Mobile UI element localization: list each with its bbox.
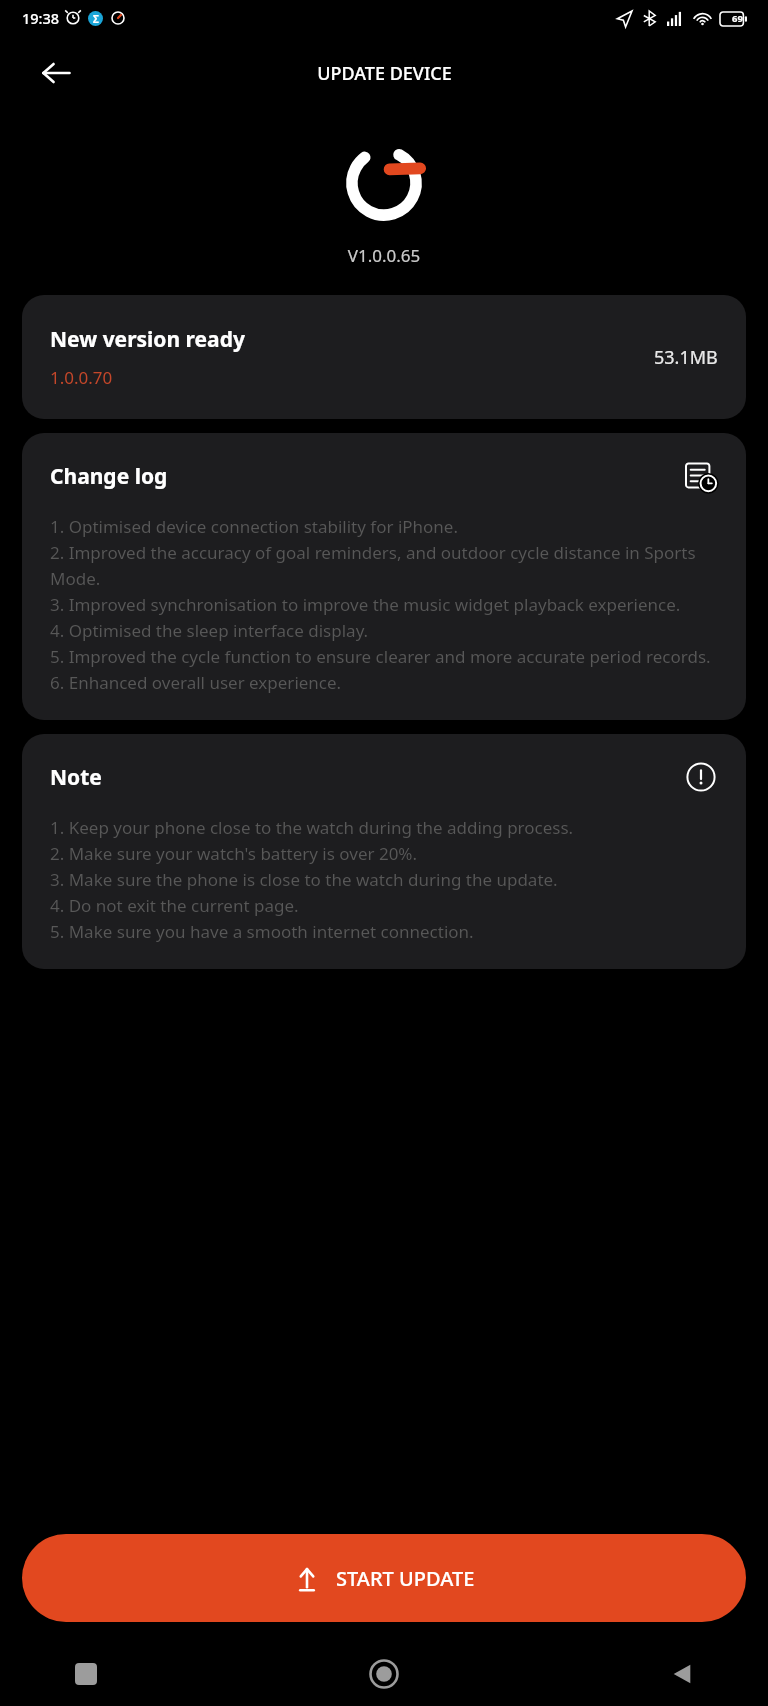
other: Note bbox=[684, 760, 718, 794]
button[interactable]: Back bbox=[36, 53, 76, 93]
staticText: 1. Keep your phone close to the watch du… bbox=[50, 816, 574, 943]
staticText: START UPDATE bbox=[336, 1565, 475, 1592]
button[interactable]: Home bbox=[358, 1648, 410, 1700]
button[interactable]: Note bbox=[22, 734, 746, 969]
button[interactable]: Recent apps bbox=[60, 1648, 112, 1700]
staticText: Note bbox=[50, 763, 684, 792]
staticText: 69 bbox=[732, 12, 743, 25]
button[interactable]: Change log bbox=[22, 433, 746, 720]
button[interactable]: Back bbox=[656, 1648, 708, 1700]
button[interactable]: New version ready bbox=[22, 295, 746, 419]
staticText: 19:38 bbox=[22, 8, 60, 28]
staticText: 1.0.0.70 bbox=[50, 366, 113, 389]
other: Change log bbox=[684, 459, 718, 493]
staticText: Change log bbox=[50, 462, 684, 491]
staticText: New version ready bbox=[50, 325, 245, 354]
button[interactable]: START UPDATE bbox=[22, 1534, 746, 1622]
staticText: UPDATE DEVICE bbox=[317, 61, 452, 86]
staticText: V1.0.0.65 bbox=[0, 244, 768, 267]
staticText: 1. Optimised device connection stability… bbox=[50, 515, 718, 694]
staticText: Σ bbox=[93, 12, 99, 26]
staticText: 53.1MB bbox=[654, 345, 718, 370]
